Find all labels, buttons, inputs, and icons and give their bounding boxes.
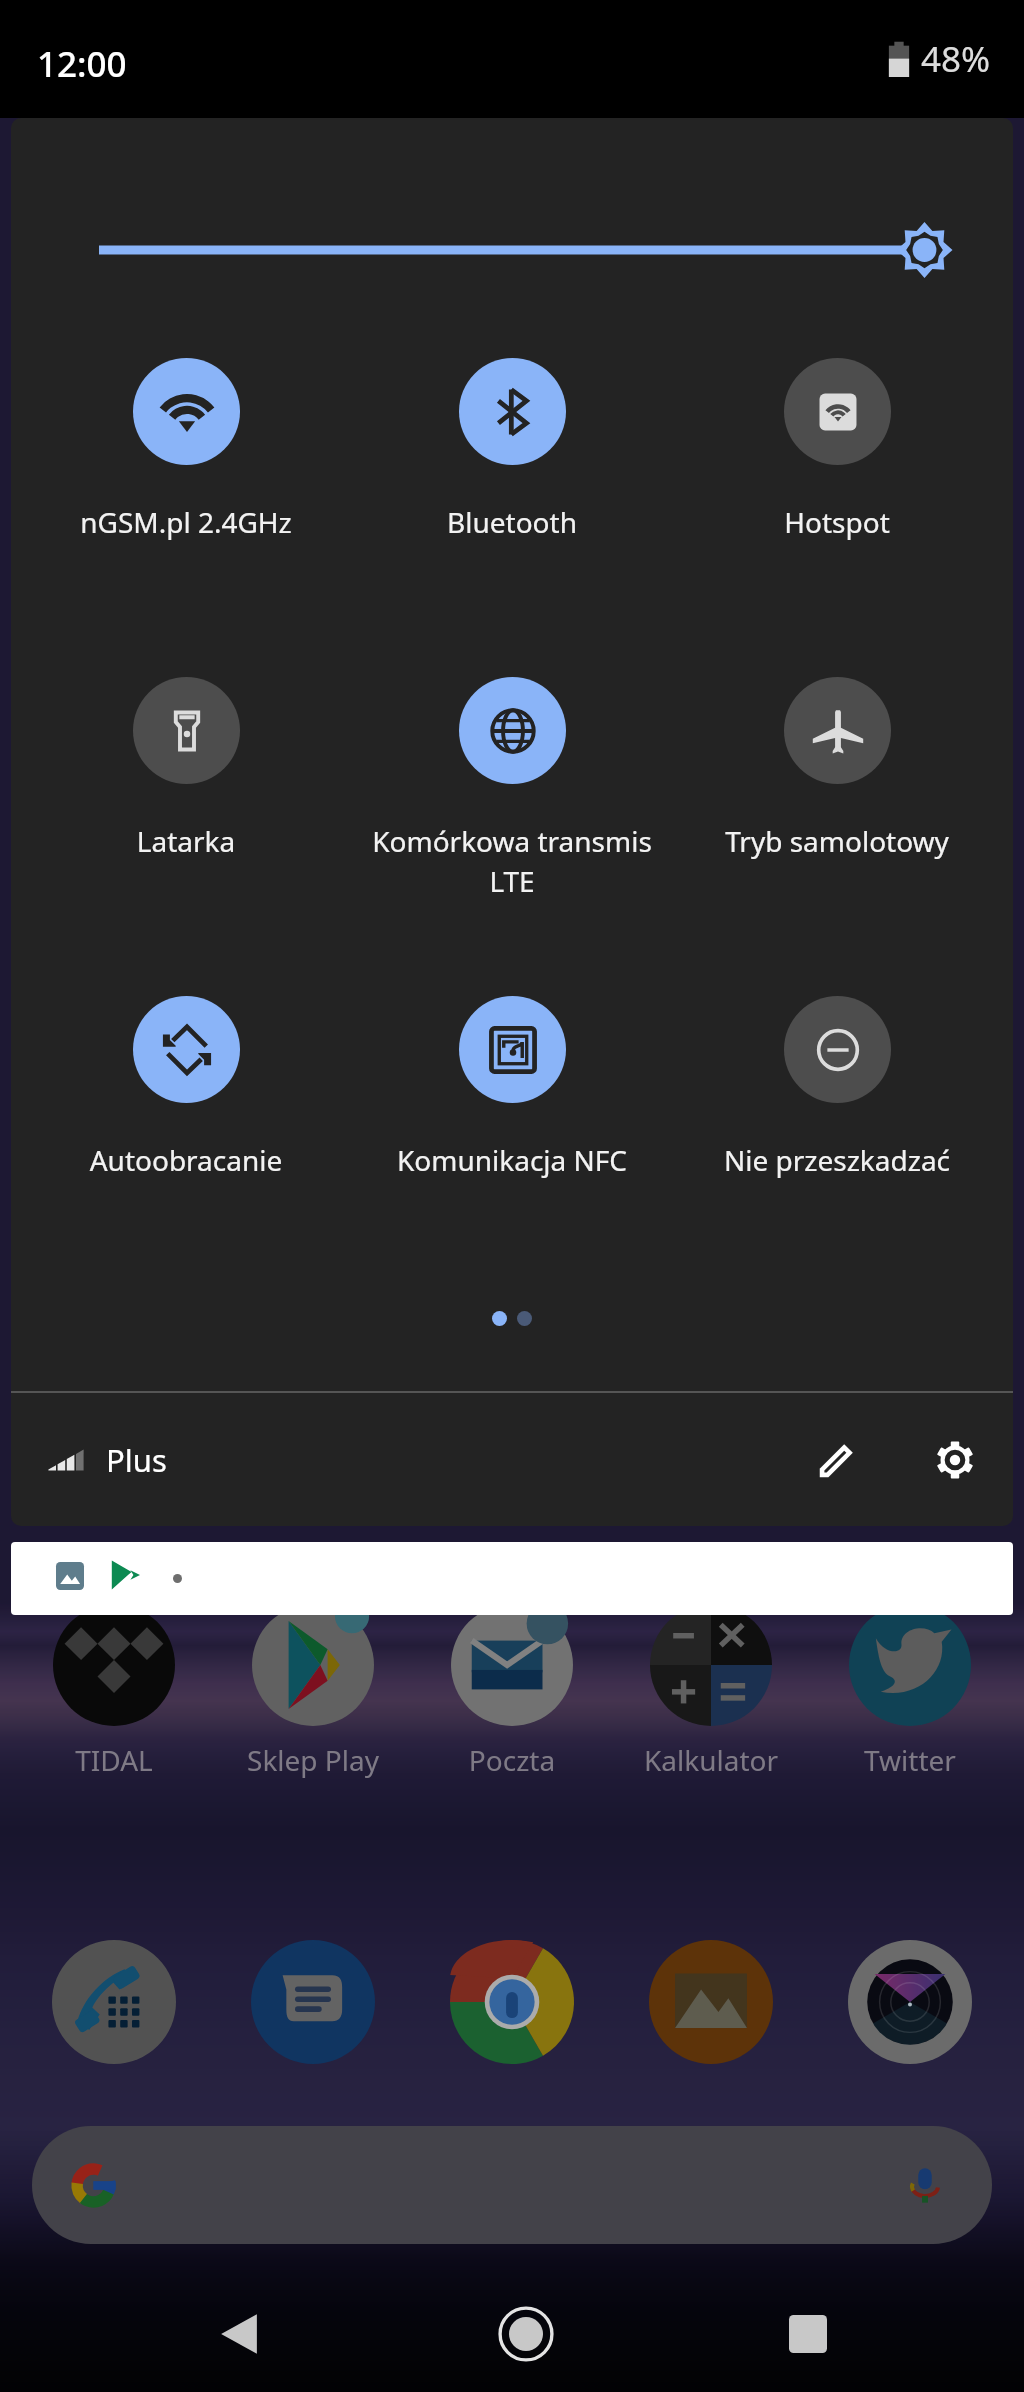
staticText: Plus — [106, 1439, 167, 1481]
button[interactable]: Twitter — [815, 1604, 1005, 1779]
staticText: 48% — [921, 35, 991, 83]
button[interactable]: TIDAL — [19, 1604, 209, 1779]
button[interactable]: nGSM.pl 2.4GHz — [27, 358, 345, 541]
staticText: Poczta — [417, 1741, 607, 1779]
staticText: Hotspot — [678, 503, 996, 541]
button[interactable]: Home — [476, 2284, 576, 2384]
button[interactable]: Latarka — [27, 677, 345, 860]
button[interactable]: Komórkowa transmis LTE — [353, 677, 671, 901]
button[interactable]: Plus — [46, 1439, 167, 1481]
button[interactable]: Nie przeszkadzać — [678, 996, 996, 1179]
button[interactable]: Back — [189, 2284, 289, 2384]
button[interactable]: Poczta — [417, 1604, 607, 1779]
button[interactable]: Settings — [908, 1413, 1002, 1507]
staticText: Nie przeszkadzać — [678, 1141, 996, 1179]
button[interactable]: Hotspot — [678, 358, 996, 541]
staticText: Tryb samolotowy — [678, 822, 996, 860]
button[interactable] — [11, 1542, 1013, 1615]
button[interactable]: Komunikacja NFC — [353, 996, 671, 1179]
staticText: nGSM.pl 2.4GHz — [27, 503, 345, 541]
button[interactable]: Bluetooth — [353, 358, 671, 541]
button[interactable]: Gallery — [646, 1937, 776, 2067]
button[interactable] — [11, 210, 1013, 290]
staticText: TIDAL — [19, 1741, 209, 1779]
button[interactable]: Recent apps — [758, 2284, 858, 2384]
button[interactable]: Kalkulator — [616, 1604, 806, 1779]
button[interactable]: Chrome — [447, 1937, 577, 2067]
staticText: Sklep Play — [218, 1741, 408, 1779]
button[interactable]: Autoobracanie — [27, 996, 345, 1179]
staticText: 12:00 — [37, 40, 127, 88]
button[interactable]: Messages — [248, 1937, 378, 2067]
button[interactable]: Camera — [845, 1937, 975, 2067]
staticText: Autoobracanie — [27, 1141, 345, 1179]
staticText: Komunikacja NFC — [353, 1141, 671, 1179]
staticText: Komórkowa transmis LTE — [353, 822, 671, 901]
staticText: Kalkulator — [616, 1741, 806, 1779]
staticText: Latarka — [27, 822, 345, 860]
staticText: Twitter — [815, 1741, 1005, 1779]
button[interactable]: Sklep Play — [218, 1604, 408, 1779]
button[interactable] — [32, 2126, 992, 2244]
button[interactable]: Tryb samolotowy — [678, 677, 996, 860]
staticText: Bluetooth — [353, 503, 671, 541]
button[interactable]: Phone — [49, 1937, 179, 2067]
button[interactable]: Edit tiles — [790, 1413, 884, 1507]
